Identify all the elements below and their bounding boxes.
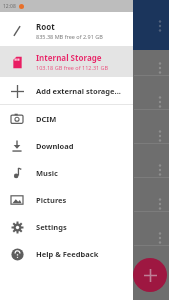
button[interactable]: Root <box>0 15 133 46</box>
staticText: Download <box>36 141 74 151</box>
button[interactable]: Settings <box>0 213 133 240</box>
button[interactable]: More options <box>152 15 168 37</box>
button[interactable]: Item options <box>152 126 168 146</box>
staticText: Help & Feedback <box>36 249 99 259</box>
staticText: DCIM <box>36 114 57 124</box>
staticText: Root <box>36 21 55 32</box>
staticText: Internal Storage <box>36 52 102 63</box>
button[interactable]: Item options <box>152 58 168 78</box>
button[interactable]: Item options <box>152 228 168 248</box>
staticText: 103.18 GB free of 112.31 GB <box>36 64 109 71</box>
staticText: 12:08 <box>3 3 16 10</box>
button[interactable]: Item options <box>152 194 168 214</box>
button[interactable]: Add external storage... <box>0 77 133 104</box>
staticText: 835.38 MB free of 2.91 GB <box>36 33 103 40</box>
button[interactable]: Pictures <box>0 186 133 213</box>
staticText: Settings <box>36 222 67 232</box>
button[interactable]: Add <box>133 258 167 292</box>
button[interactable]: DCIM <box>0 105 133 132</box>
staticText: Add external storage... <box>36 86 121 96</box>
staticText: Pictures <box>36 195 67 205</box>
staticText: Music <box>36 168 58 178</box>
button[interactable]: Internal Storage <box>0 46 133 77</box>
button[interactable]: Item options <box>152 160 168 180</box>
button[interactable]: Music <box>0 159 133 186</box>
button[interactable]: Download <box>0 132 133 159</box>
button[interactable]: Help & Feedback <box>0 240 133 267</box>
button[interactable]: Item options <box>152 92 168 112</box>
